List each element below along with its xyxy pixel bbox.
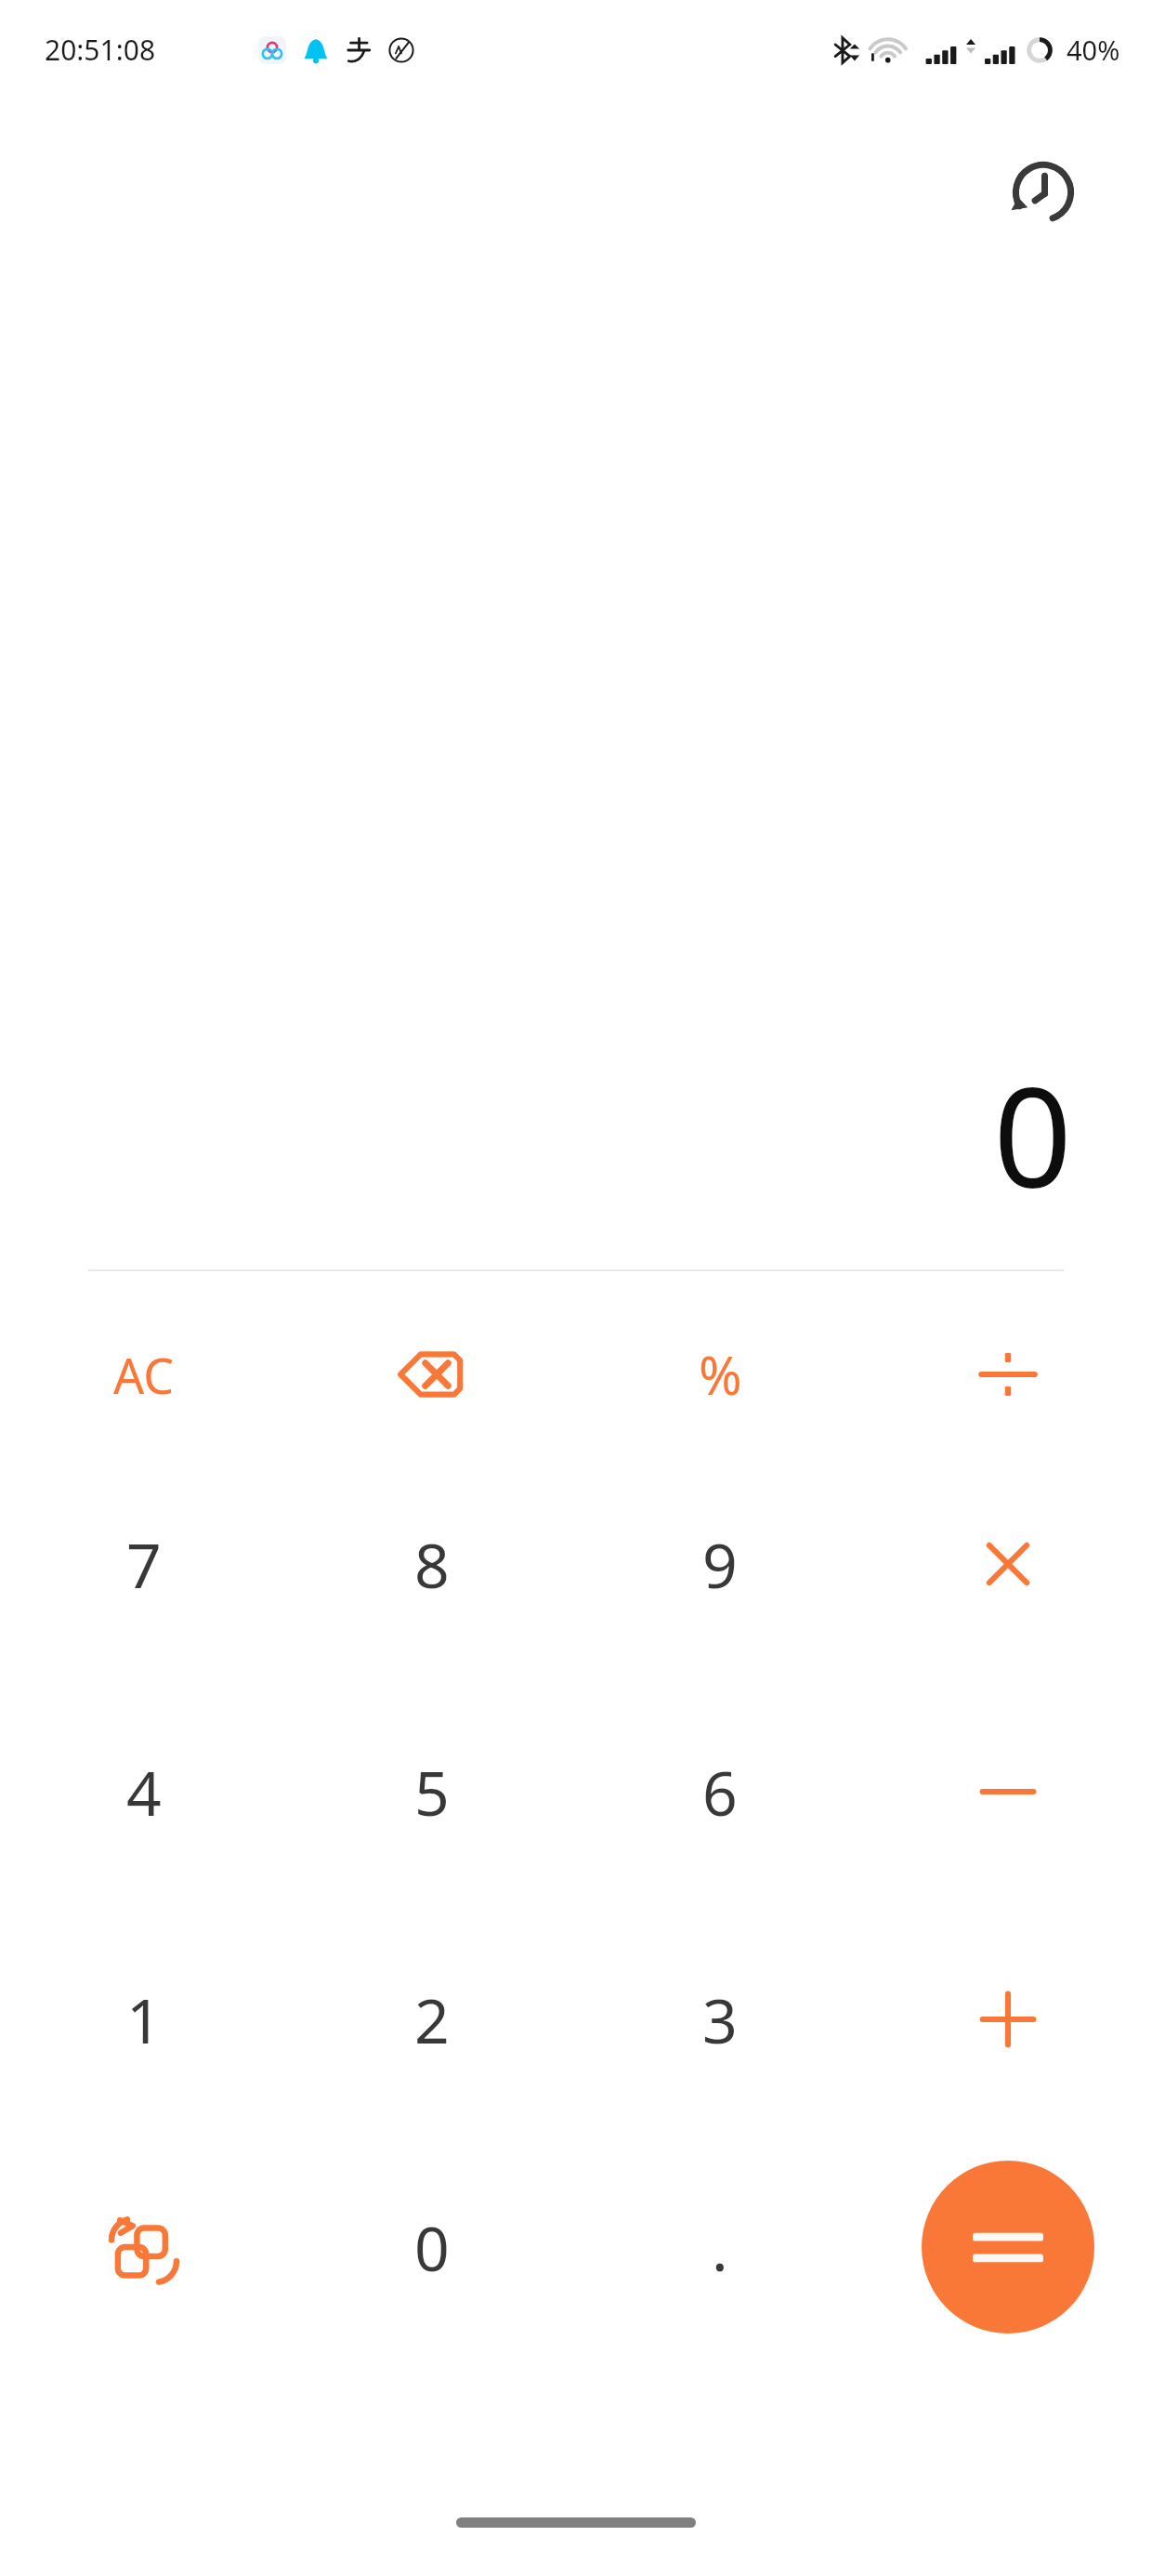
staticText: 0	[414, 2205, 450, 2289]
staticText: 6	[702, 1750, 738, 1833]
button[interactable]: 3	[576, 1905, 864, 2133]
button[interactable]: 8	[288, 1450, 576, 1677]
staticText: 9	[702, 1522, 738, 1606]
button[interactable]: 0	[288, 2133, 576, 2360]
staticText: 3	[702, 1978, 738, 2061]
button[interactable]: 1	[0, 1905, 288, 2133]
staticText: 2	[414, 1978, 450, 2061]
button[interactable]: Plus	[864, 1905, 1152, 2133]
button[interactable]: Equals	[922, 2161, 1094, 2333]
button[interactable]: 2	[288, 1905, 576, 2133]
staticText: 1	[126, 1978, 162, 2061]
staticText: 5	[414, 1750, 450, 1833]
button[interactable]: History	[990, 139, 1096, 245]
staticText: 8	[414, 1522, 450, 1606]
staticText: .	[712, 2205, 728, 2289]
button[interactable]: Divide	[864, 1299, 1152, 1450]
button[interactable]: Unit converter	[0, 2133, 288, 2360]
button[interactable]: 5	[288, 1677, 576, 1905]
staticText: %	[699, 1339, 742, 1410]
button[interactable]: 4	[0, 1677, 288, 1905]
button[interactable]: Backspace	[288, 1299, 576, 1450]
button[interactable]: AC	[0, 1299, 288, 1450]
staticText: 20:51:08	[45, 31, 156, 69]
button[interactable]: Multiply	[864, 1450, 1152, 1677]
staticText: 40%	[1067, 32, 1120, 68]
button[interactable]: 7	[0, 1450, 288, 1677]
button[interactable]: 9	[576, 1450, 864, 1677]
staticText: 0	[0, 1041, 1072, 1229]
staticText: 4	[126, 1750, 162, 1833]
button[interactable]: %	[576, 1299, 864, 1450]
button[interactable]: 6	[576, 1677, 864, 1905]
staticText: 7	[126, 1522, 162, 1606]
button[interactable]: Minus	[864, 1677, 1152, 1905]
button[interactable]: .	[576, 2133, 864, 2360]
staticText: AC	[113, 1342, 175, 1408]
